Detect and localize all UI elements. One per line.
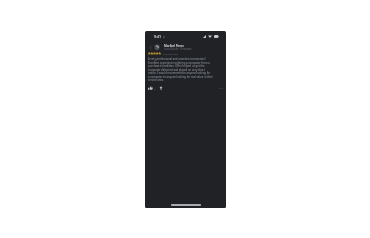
button[interactable]: Like [148,86,156,90]
staticText: purchased condition. Offer helped us get… [148,64,205,68]
staticText: 9:41 [154,34,162,39]
other: Back [149,46,152,49]
staticText: a computer to anyone looking for real va… [148,75,213,79]
button[interactable]: Back [145,43,226,51]
button[interactable]: More options [219,86,223,90]
staticText: Excellent experience ordering a computer… [148,61,210,65]
staticText: A very professional and seamless transac… [148,57,206,61]
staticText: a month ago [163,52,178,55]
staticText: Maribel Perez [164,44,184,48]
button[interactable]: Share [159,86,163,90]
staticText: 2 [154,87,156,90]
staticText: computer delivered and placed on very sh… [148,68,205,72]
staticText: service area. [148,78,164,82]
staticText: notice. I would recommend to anyone look… [148,71,211,75]
staticText: Local Guide · 8 reviews [164,47,192,51]
